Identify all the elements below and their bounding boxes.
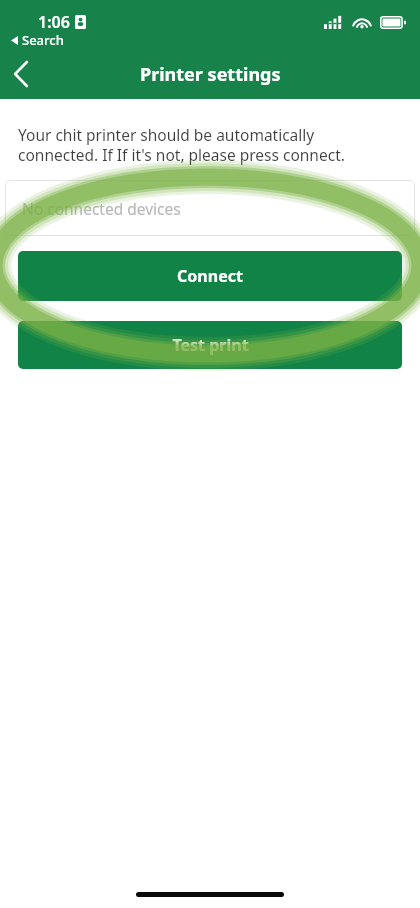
- staticText: Your chit printer should be automaticall…: [18, 124, 345, 166]
- button[interactable]: Connect: [18, 251, 402, 301]
- staticText: 1:06: [38, 11, 70, 33]
- staticText: Search: [22, 31, 64, 49]
- staticText: Printer settings: [140, 62, 281, 87]
- staticText: Connect: [177, 265, 243, 287]
- staticText: No connected devices: [22, 198, 181, 219]
- button[interactable]: Test print: [18, 321, 402, 369]
- staticText: Test print: [172, 334, 249, 356]
- button[interactable]: Back: [0, 53, 42, 95]
- button[interactable]: No connected devices: [5, 180, 415, 236]
